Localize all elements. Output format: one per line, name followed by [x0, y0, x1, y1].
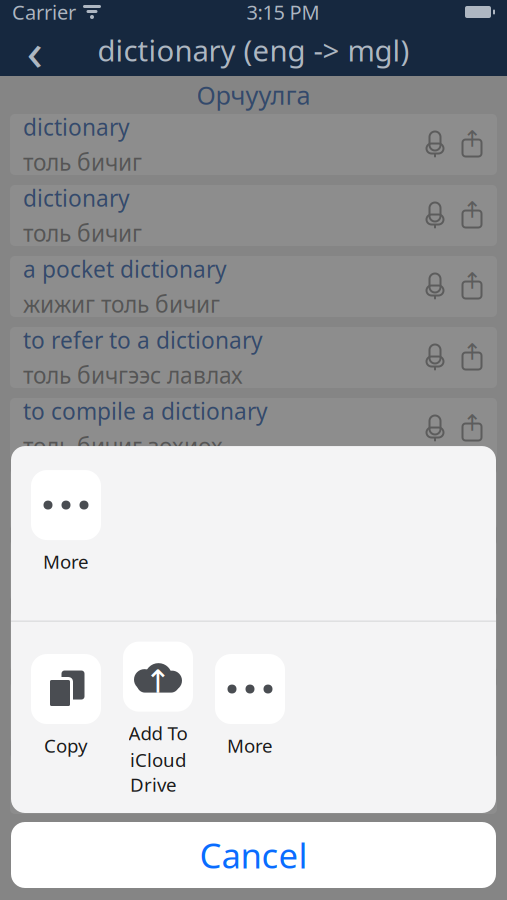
button[interactable]: dictionary — [10, 469, 497, 530]
staticText: ↑ — [462, 339, 481, 365]
staticText: толь бичиг зохиох — [23, 431, 223, 461]
button[interactable]: Copy — [22, 654, 110, 785]
staticText: dictionary — [23, 538, 130, 568]
button[interactable]: to compile a dictionary — [10, 398, 497, 459]
staticText: Add To — [128, 721, 187, 745]
button[interactable]: dictionary — [10, 185, 497, 246]
staticText: More — [227, 733, 273, 758]
button[interactable]: dictionary — [10, 753, 497, 814]
staticText: dictionary — [23, 751, 130, 781]
staticText: толь бичгээс лавлах — [23, 360, 243, 390]
button[interactable]: More — [22, 470, 110, 601]
staticText: ↑ — [462, 410, 481, 436]
staticText: More — [43, 549, 89, 574]
staticText: a pocket dictionary — [23, 254, 227, 284]
staticText: Орчуулга — [196, 78, 310, 112]
button[interactable]: to refer to a dictionary — [10, 327, 497, 388]
button[interactable]: Cancel — [11, 822, 496, 888]
button[interactable]: dictionary — [10, 611, 497, 672]
staticText: толь бичиг — [23, 147, 142, 177]
staticText: dictionary — [23, 609, 130, 639]
staticText: жижиг толь бичиг — [23, 289, 220, 319]
button[interactable]: a pocket dictionary — [10, 256, 497, 317]
staticText: iCloud Drive — [130, 747, 186, 797]
staticText: ‹ — [26, 15, 43, 85]
staticText: dictionary (eng -> mgl) — [97, 30, 409, 69]
staticText: to refer to a dictionary — [23, 325, 263, 355]
staticText: ↑ — [462, 268, 481, 294]
button[interactable]: ↑ — [114, 642, 202, 797]
button[interactable]: More — [206, 654, 294, 785]
staticText: dictionary — [23, 112, 130, 142]
staticText: dictionary — [23, 183, 130, 213]
button[interactable]: dictionary attack — [10, 682, 497, 743]
staticText: толь бичиг — [23, 218, 142, 248]
staticText: dictionary — [23, 467, 130, 497]
staticText: ↑ — [462, 197, 481, 223]
staticText: толь бичиг — [23, 644, 142, 674]
staticText: to compile a dictionary — [23, 396, 268, 426]
staticText: dictionary attack — [23, 680, 201, 710]
button[interactable]: dictionary — [10, 540, 497, 601]
button[interactable]: dictionary — [10, 114, 497, 175]
staticText: Carrier — [12, 0, 76, 25]
staticText: ↑ — [462, 126, 481, 152]
staticText: 3:15 PM — [246, 0, 319, 25]
staticText: Copy — [44, 733, 88, 758]
staticText: ↑ — [144, 663, 171, 700]
button[interactable]: Back — [0, 24, 70, 76]
staticText: Cancel — [199, 832, 307, 878]
staticText: толь бичгийн довтолгоо — [23, 715, 288, 745]
staticText: толь бичиг — [23, 786, 142, 816]
staticText: толь бичиг — [23, 502, 142, 532]
